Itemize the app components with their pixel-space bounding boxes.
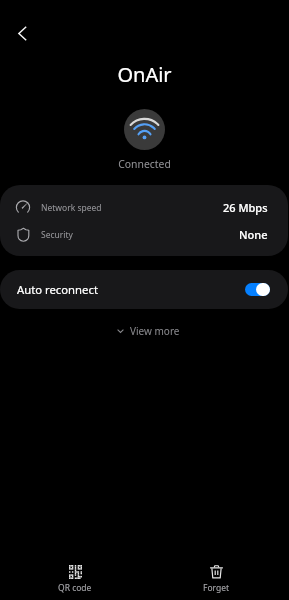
staticText: Auto reconnect — [17, 282, 98, 297]
button[interactable]: Back — [0, 11, 44, 55]
staticText: OnAir — [0, 61, 289, 88]
button[interactable]: Auto reconnect — [0, 270, 288, 309]
button[interactable]: View more — [4, 321, 289, 341]
button[interactable]: Forget — [156, 556, 276, 600]
staticText: View more — [130, 324, 180, 338]
button[interactable]: QR code — [15, 556, 135, 600]
staticText: Network speed — [41, 202, 102, 214]
staticText: 26 Mbps — [223, 200, 268, 215]
button[interactable]: Security — [0, 221, 288, 248]
staticText: Connected — [0, 157, 289, 171]
staticText: Forget — [203, 582, 230, 594]
staticText: Security — [41, 229, 73, 241]
staticText: None — [239, 227, 268, 242]
staticText: QR code — [58, 582, 92, 594]
button[interactable]: Network speed — [0, 194, 288, 221]
